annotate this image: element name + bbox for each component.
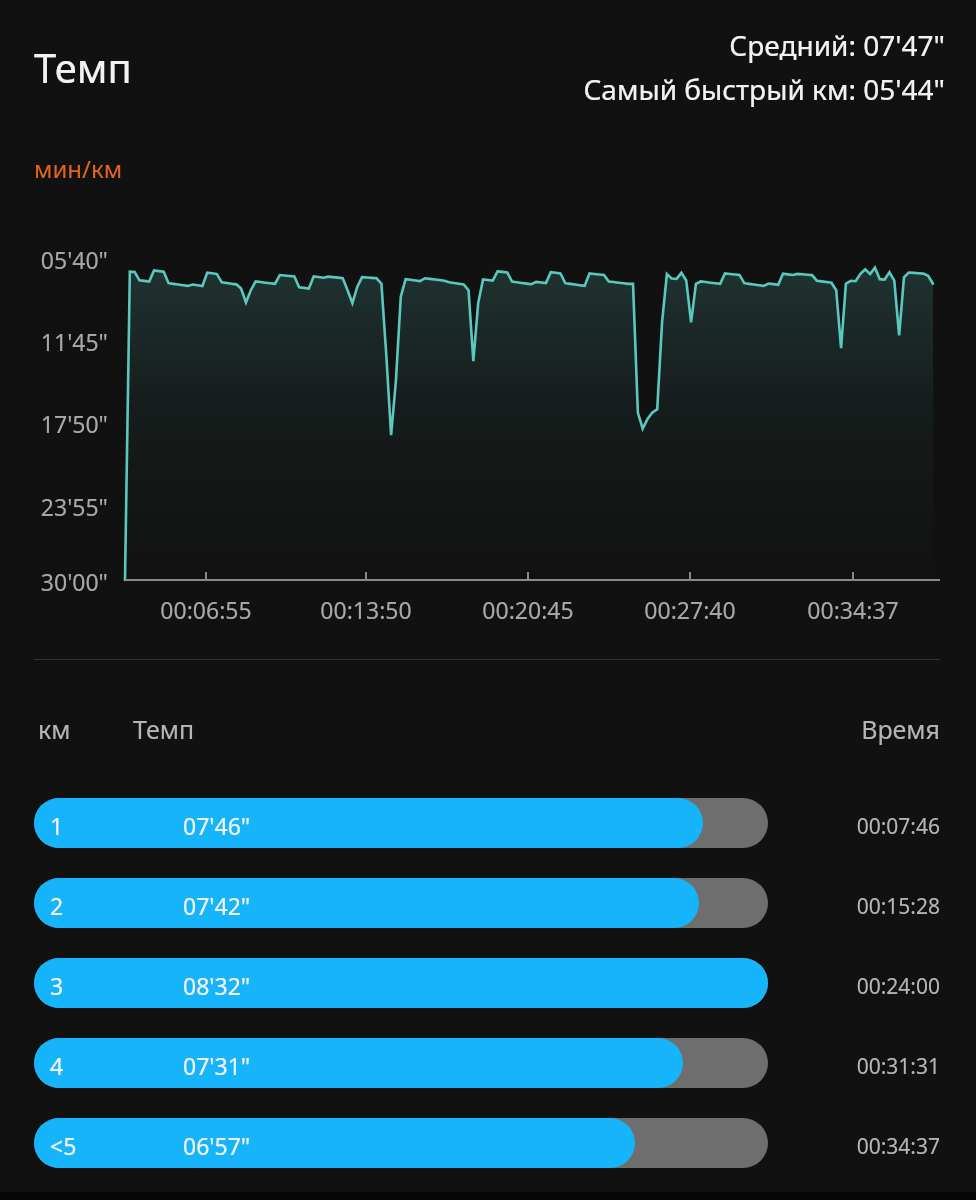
- staticText: 00:20:45: [448, 594, 608, 625]
- staticText: Самый быстрый км: 05'44": [583, 70, 945, 108]
- staticText: мин/км: [34, 152, 123, 185]
- staticText: 1: [50, 810, 64, 841]
- staticText: 23'55": [0, 491, 108, 522]
- staticText: 00:07:46: [790, 812, 940, 841]
- staticText: 00:34:37: [790, 1132, 940, 1161]
- button[interactable]: 2: [0, 863, 976, 943]
- staticText: 05'40": [0, 244, 108, 275]
- staticText: 3: [50, 970, 64, 1001]
- staticText: <5: [50, 1130, 77, 1161]
- staticText: Время: [790, 712, 940, 746]
- staticText: 06'57": [183, 1130, 251, 1161]
- staticText: 07'46": [183, 810, 251, 841]
- staticText: 30'00": [0, 566, 108, 597]
- staticText: 2: [50, 890, 64, 921]
- staticText: 00:13:50: [286, 594, 446, 625]
- button[interactable]: 3: [0, 943, 976, 1023]
- staticText: 00:31:31: [790, 1052, 940, 1081]
- staticText: 00:24:00: [790, 972, 940, 1001]
- staticText: 00:27:40: [610, 594, 770, 625]
- button[interactable]: 1: [0, 783, 976, 863]
- staticText: Темп: [133, 712, 195, 746]
- staticText: 00:34:37: [773, 594, 933, 625]
- staticText: 00:06:55: [126, 594, 286, 625]
- staticText: 4: [50, 1050, 64, 1081]
- button[interactable]: <5: [0, 1103, 976, 1183]
- staticText: 08'32": [183, 970, 251, 1001]
- button[interactable]: 4: [0, 1023, 976, 1103]
- staticText: 07'31": [183, 1050, 251, 1081]
- staticText: Темп: [34, 40, 132, 94]
- staticText: Средний: 07'47": [729, 26, 945, 64]
- staticText: км: [38, 712, 71, 746]
- staticText: 00:15:28: [790, 892, 940, 921]
- staticText: 17'50": [0, 408, 108, 439]
- staticText: 11'45": [0, 326, 108, 357]
- staticText: 07'42": [183, 890, 251, 921]
